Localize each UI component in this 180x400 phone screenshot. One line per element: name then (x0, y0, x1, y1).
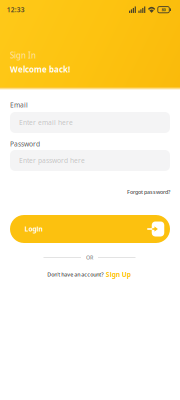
button[interactable]: Enter email here (10, 112, 170, 133)
staticText: Email (10, 101, 28, 109)
staticText: OR (86, 254, 93, 261)
staticText: Sign Up (106, 270, 131, 279)
staticText: Enter email here (19, 118, 73, 127)
button[interactable]: Sign Up (106, 270, 131, 279)
button[interactable]: Login (10, 215, 170, 243)
staticText: Don't have an account? (47, 271, 103, 278)
staticText: Forgot password? (127, 188, 170, 196)
button[interactable]: Enter password here (10, 150, 170, 171)
staticText: Welcome back! (10, 64, 70, 75)
staticText: Login (24, 225, 42, 233)
staticText: Sign In (10, 50, 36, 61)
staticText: Password (10, 140, 40, 148)
staticText: Enter password here (19, 156, 85, 165)
button[interactable]: Forgot password? (127, 188, 170, 196)
staticText: 12:33 (7, 5, 25, 14)
staticText: 80 (162, 7, 166, 12)
